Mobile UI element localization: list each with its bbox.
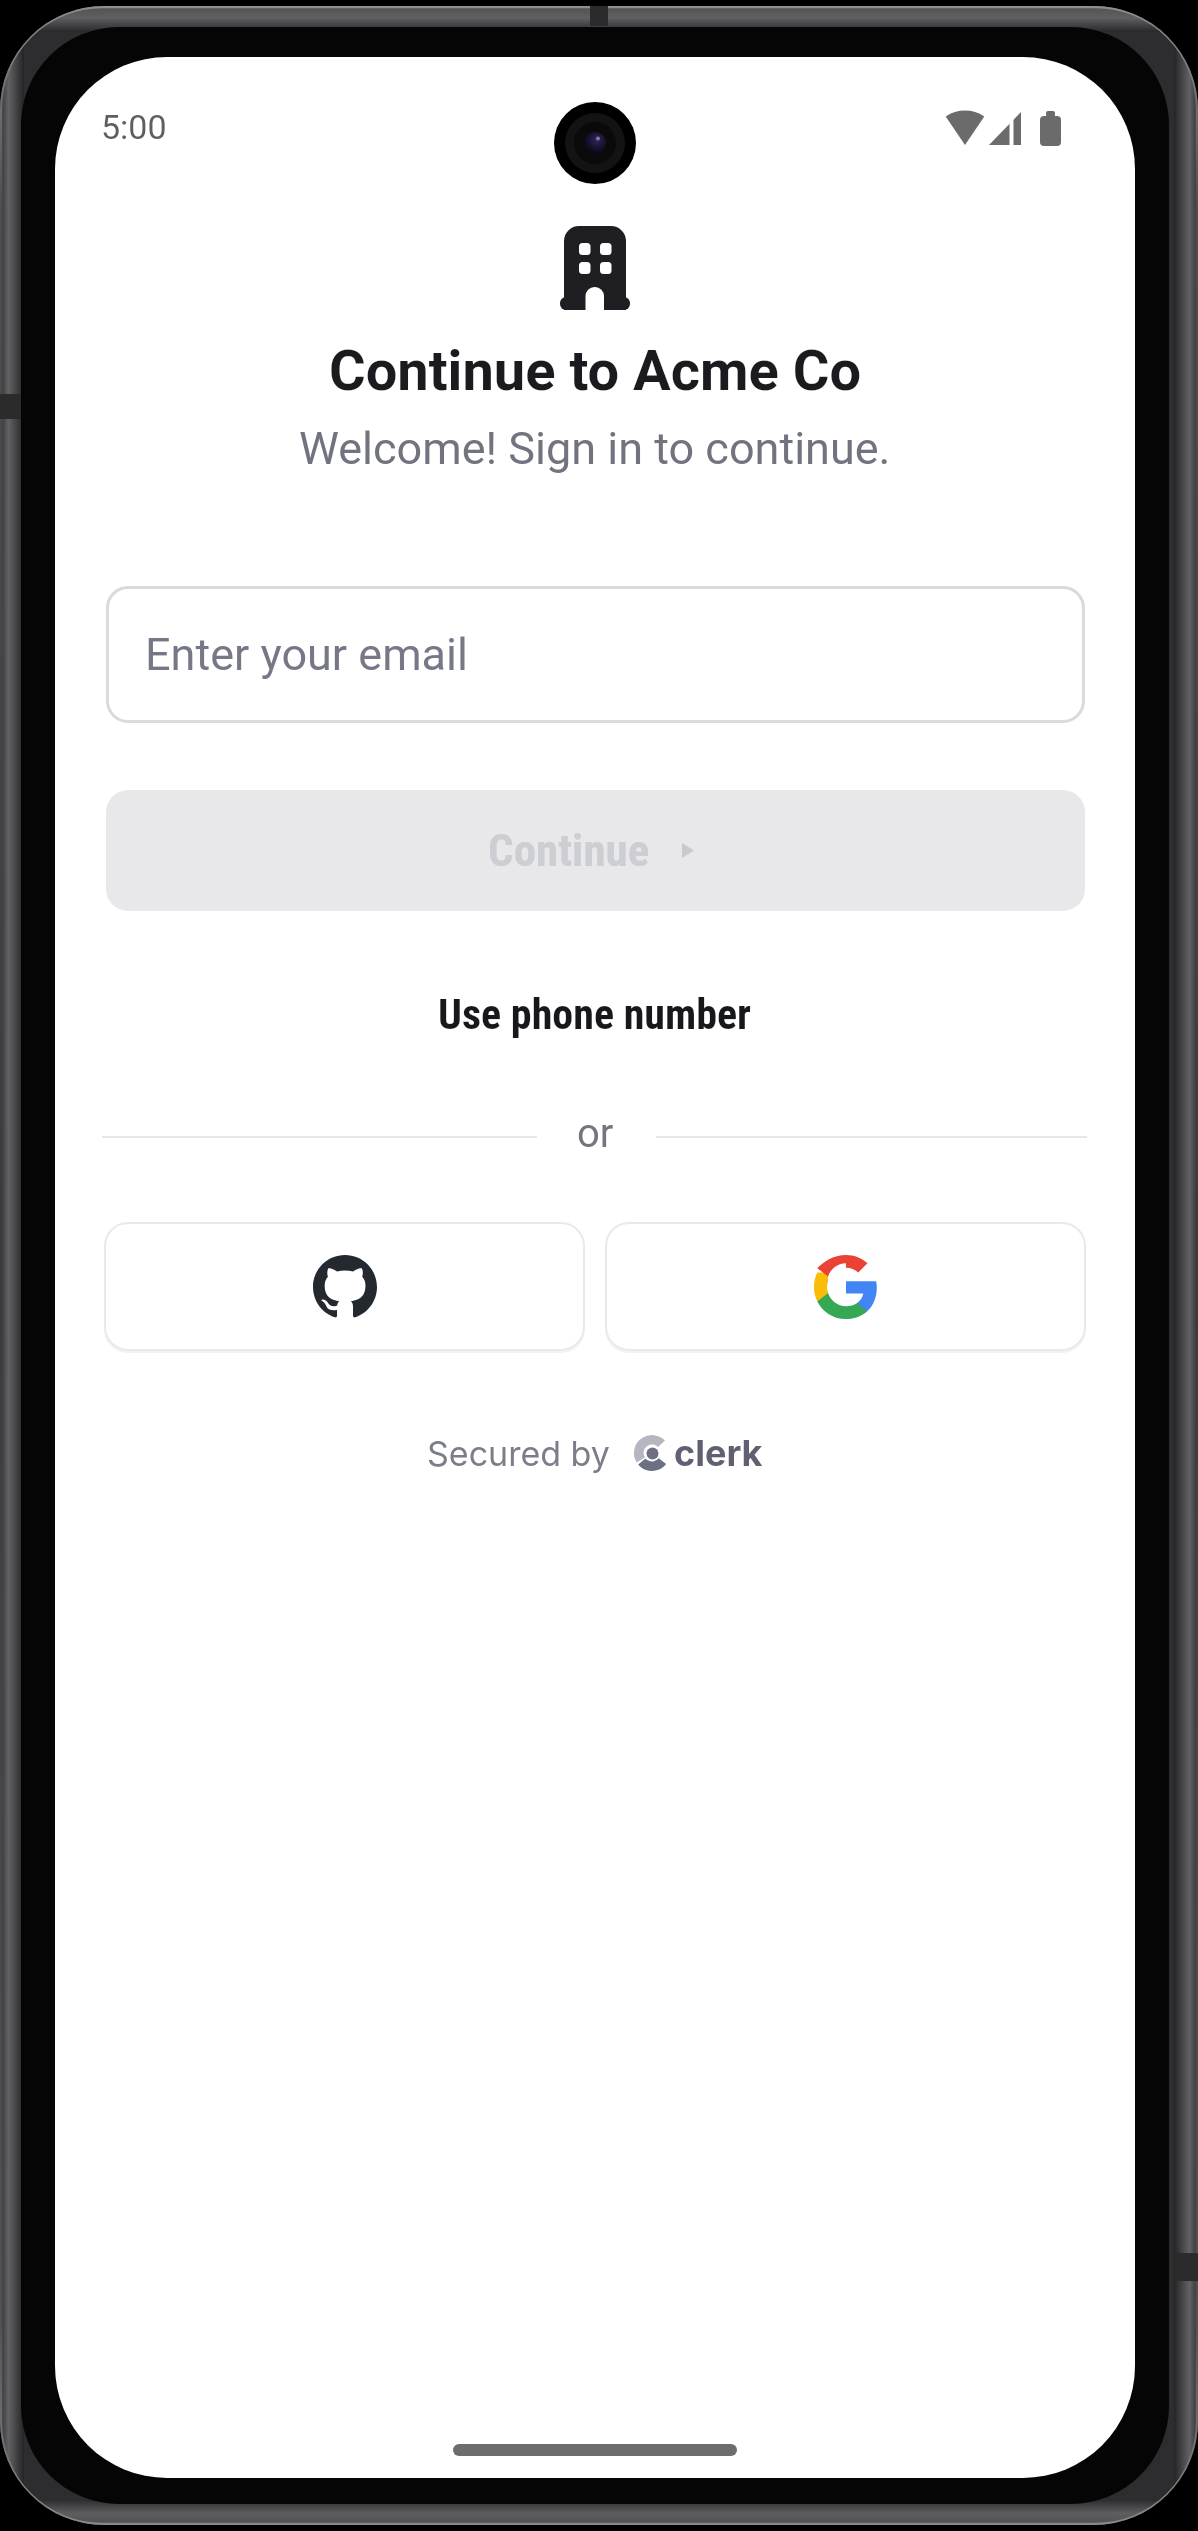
button[interactable]: Continue [106,790,1085,911]
staticText: Continue [488,824,650,877]
staticText: Use phone number [438,990,752,1039]
staticText: Enter your email [145,628,468,681]
staticText: clerk [674,1431,763,1475]
button[interactable]: Use phone number [55,990,1135,1039]
button[interactable]: Enter your email [106,586,1085,723]
button[interactable] [605,1222,1086,1351]
staticText: Secured by [427,1433,610,1474]
staticText: or [577,1110,614,1157]
button[interactable] [104,1222,585,1351]
staticText: 5:00 [101,107,167,147]
staticText: Continue to Acme Co [329,338,862,404]
staticText: Welcome! Sign in to continue. [299,422,891,475]
